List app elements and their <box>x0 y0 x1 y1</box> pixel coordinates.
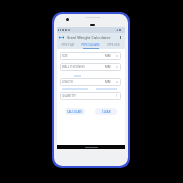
staticText: PIPE HEX <box>107 43 120 47</box>
button[interactable]: Navigate up <box>59 34 64 41</box>
button[interactable]: WALL THICKNESS <box>62 63 118 71</box>
staticText: LENGTH <box>62 80 73 84</box>
button[interactable]: More options <box>118 34 122 41</box>
staticText: Steel Weight Calculator <box>67 35 111 40</box>
staticText: MM <box>105 65 111 69</box>
button[interactable]: CALCULATE <box>65 108 85 115</box>
button[interactable]: SIZE <box>62 52 118 60</box>
button[interactable]: QUANTITY <box>62 92 118 100</box>
staticText: MM <box>105 80 111 84</box>
staticText: CALCULATE <box>67 110 83 114</box>
staticText: PIPE SQUARE <box>81 43 100 47</box>
button[interactable]: PIPE FLAT <box>57 42 79 49</box>
staticText: PIPE FLAT <box>61 43 75 47</box>
button[interactable]: PIPE HEX <box>102 42 125 49</box>
button[interactable]: LENGTH <box>62 78 118 86</box>
staticText: SIZE <box>62 54 68 58</box>
button[interactable]: PIPE SQUARE <box>79 42 102 49</box>
staticText: MM <box>105 54 111 58</box>
button[interactable]: CLEAR <box>95 108 117 115</box>
staticText: WALL THICKNESS <box>62 65 85 69</box>
staticText: CLEAR <box>102 110 111 114</box>
staticText: QUANTITY <box>62 94 76 98</box>
staticText: 1 <box>116 94 118 98</box>
